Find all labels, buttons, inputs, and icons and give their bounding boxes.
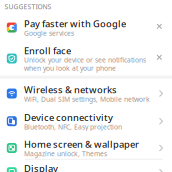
staticText: Enroll face	[24, 44, 71, 57]
staticText: Unlock your device or see notifications …	[24, 56, 146, 73]
staticText: Pay faster with Google	[24, 17, 126, 30]
staticText: Google services	[24, 29, 74, 38]
button[interactable]: Dismiss	[157, 56, 172, 61]
button[interactable]: Display	[0, 162, 172, 172]
staticText: WiFi, Dual SIM settings, Mobile network	[24, 95, 150, 104]
staticText: Home screen & wallpaper	[24, 138, 139, 150]
button[interactable]: Wireless & networks	[0, 83, 172, 103]
button[interactable]: Pay faster with Google	[0, 17, 172, 37]
staticText: Magazine unlock, Themes	[24, 149, 107, 158]
staticText: Wireless & networks	[24, 83, 117, 96]
staticText: Bluetooth, NFC, Easy projection	[24, 122, 122, 131]
staticText: SUGGESTIONS	[4, 2, 51, 11]
button[interactable]: Dismiss	[157, 25, 172, 30]
button[interactable]: Home screen & wallpaper	[0, 138, 172, 158]
staticText: Display	[24, 162, 58, 172]
button[interactable]: Enroll face	[0, 44, 172, 73]
button[interactable]: Device connectivity	[0, 111, 172, 131]
staticText: Device connectivity	[24, 111, 113, 124]
